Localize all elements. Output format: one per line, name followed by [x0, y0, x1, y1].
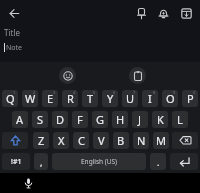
- button[interactable]: B: [113, 132, 129, 149]
- staticText: P: [187, 91, 194, 106]
- staticText: I: [148, 91, 152, 106]
- button[interactable]: English (US): [52, 153, 146, 170]
- button[interactable]: X: [53, 132, 69, 149]
- button[interactable]: G: [92, 111, 108, 128]
- button[interactable]: Y: [102, 90, 118, 107]
- staticText: B: [117, 133, 125, 148]
- staticText: E: [47, 91, 54, 106]
- staticText: Title: [4, 27, 20, 38]
- button[interactable]: P: [182, 90, 198, 107]
- staticText: T: [87, 91, 94, 106]
- button[interactable]: K: [152, 111, 168, 128]
- staticText: X: [58, 133, 65, 148]
- staticText: A: [16, 112, 24, 127]
- staticText: F: [77, 112, 83, 127]
- button[interactable]: [170, 153, 198, 170]
- button[interactable]: [129, 67, 146, 84]
- button[interactable]: A: [12, 111, 28, 128]
- staticText: 2: [33, 90, 36, 95]
- button[interactable]: H: [112, 111, 128, 128]
- staticText: Q: [6, 91, 15, 106]
- button[interactable]: U: [122, 90, 138, 107]
- button[interactable]: D: [52, 111, 68, 128]
- staticText: N: [137, 133, 146, 148]
- button[interactable]: L: [172, 111, 188, 128]
- button[interactable]: C: [73, 132, 89, 149]
- button[interactable]: ,: [34, 153, 48, 170]
- staticText: .: [157, 156, 160, 168]
- button[interactable]: I: [142, 90, 158, 107]
- button[interactable]: F: [72, 111, 88, 128]
- staticText: 9: [173, 90, 176, 95]
- staticText: !#1: [11, 157, 22, 167]
- staticText: G: [96, 112, 105, 127]
- button[interactable]: [181, 8, 192, 19]
- staticText: W: [25, 91, 36, 106]
- staticText: H: [116, 112, 125, 127]
- staticText: 6: [113, 90, 116, 95]
- staticText: 3: [53, 90, 56, 95]
- button[interactable]: !#1: [2, 153, 30, 170]
- staticText: J: [138, 112, 142, 127]
- button[interactable]: J: [132, 111, 148, 128]
- staticText: 1: [13, 90, 16, 95]
- button[interactable]: O: [162, 90, 178, 107]
- button[interactable]: E: [42, 90, 58, 107]
- button[interactable]: [23, 178, 34, 189]
- button[interactable]: [2, 132, 28, 149]
- button[interactable]: .: [150, 153, 166, 170]
- staticText: ,: [40, 156, 43, 168]
- staticText: M: [156, 133, 166, 148]
- button[interactable]: W: [22, 90, 38, 107]
- staticText: D: [56, 112, 65, 127]
- staticText: Y: [107, 91, 114, 106]
- button[interactable]: [59, 67, 76, 84]
- button[interactable]: T: [82, 90, 98, 107]
- button[interactable]: V: [93, 132, 109, 149]
- staticText: Note: [6, 43, 23, 53]
- staticText: S: [37, 112, 44, 127]
- staticText: U: [126, 91, 135, 106]
- staticText: K: [157, 112, 164, 127]
- button[interactable]: [158, 8, 169, 19]
- staticText: 8: [153, 90, 156, 95]
- staticText: C: [78, 133, 85, 148]
- button[interactable]: Z: [33, 132, 49, 149]
- button[interactable]: S: [32, 111, 48, 128]
- button[interactable]: R: [62, 90, 78, 107]
- staticText: V: [98, 133, 105, 148]
- staticText: English (US): [81, 157, 118, 166]
- button[interactable]: Q: [2, 90, 18, 107]
- button[interactable]: [9, 8, 20, 19]
- staticText: Z: [38, 133, 45, 148]
- staticText: R: [67, 91, 74, 106]
- button[interactable]: [136, 8, 147, 19]
- button[interactable]: M: [153, 132, 169, 149]
- staticText: 5: [93, 90, 96, 95]
- staticText: L: [177, 112, 183, 127]
- staticText: 4: [73, 90, 76, 95]
- staticText: 0: [193, 90, 196, 95]
- staticText: O: [166, 91, 175, 106]
- button[interactable]: N: [133, 132, 149, 149]
- staticText: 7: [133, 90, 136, 95]
- button[interactable]: [172, 132, 198, 149]
